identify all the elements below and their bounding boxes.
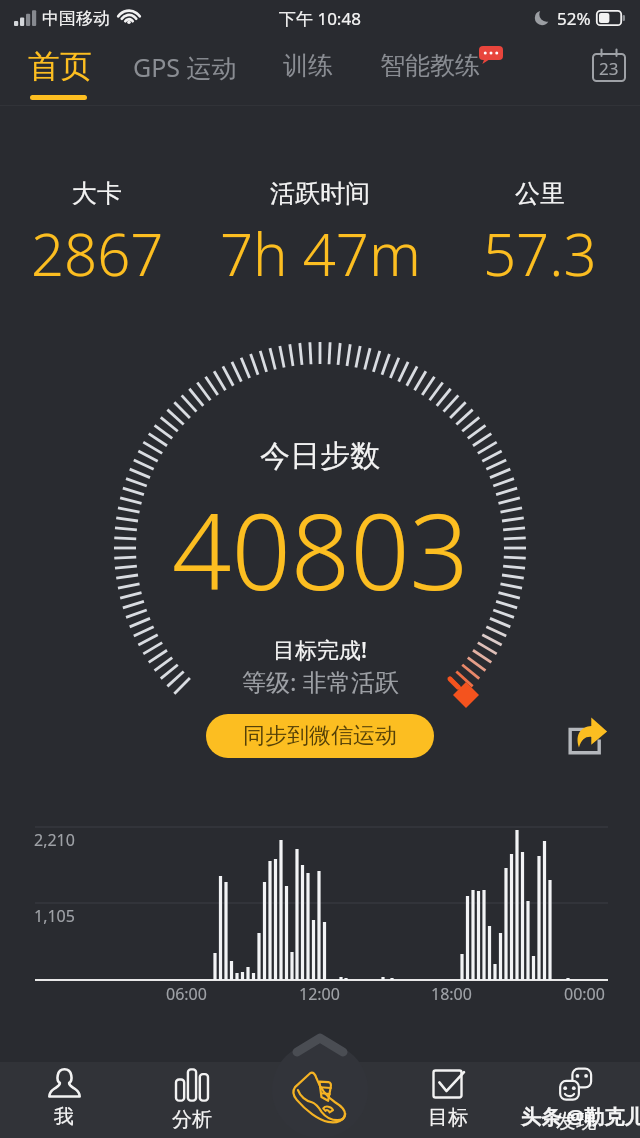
staticText: 首页 [28,46,92,86]
button[interactable]: 同步到微信运动 [206,714,434,758]
staticText: 40803 [172,479,469,621]
button[interactable]: Calendar [588,44,630,86]
button[interactable]: Share [562,712,610,760]
staticText: 06:00 [166,983,207,1005]
staticText: 52% [557,7,591,30]
staticText: 今日步数 [260,437,380,475]
button[interactable]: 目标 [384,1068,512,1138]
staticText: 等级: 非常活跃 [242,665,399,698]
button[interactable]: 训练 [269,44,347,87]
staticText: 分析 [172,1107,212,1132]
staticText: 57.3 [483,214,597,293]
staticText: 中国移动 [42,8,110,29]
staticText: 1,105 [34,905,75,927]
staticText: 下午 10:48 [279,7,361,30]
staticText: 目标完成! [273,634,368,664]
staticText: 2,210 [34,829,75,851]
button[interactable]: 发现 [512,1068,640,1138]
button[interactable]: 分析 [128,1068,256,1138]
staticText: 发现 [556,1109,596,1134]
staticText: 12:00 [299,983,340,1005]
staticText: 同步到微信运动 [243,722,397,750]
staticText: 我 [54,1104,74,1129]
button[interactable]: 智能教练 [366,44,494,87]
button[interactable]: Start run [272,1042,368,1138]
staticText: 7h 47m [220,214,421,293]
staticText: 大卡 [72,178,122,209]
staticText: 目标 [428,1105,468,1130]
button[interactable]: 首页 [14,40,106,92]
staticText: 00:00 [564,983,605,1005]
staticText: 训练 [283,50,333,81]
staticText: 智能教练 [380,50,480,81]
staticText: 23 [599,57,619,80]
staticText: 头条 @勒克儿 [521,1103,640,1130]
staticText: 活跃时间 [270,178,370,209]
staticText: 18:00 [431,983,472,1005]
staticText: GPS 运动 [133,50,237,84]
button[interactable]: GPS 运动 [119,44,251,90]
staticText: 2867 [31,214,164,293]
button[interactable]: 我 [0,1068,128,1138]
staticText: 公里 [515,178,565,209]
